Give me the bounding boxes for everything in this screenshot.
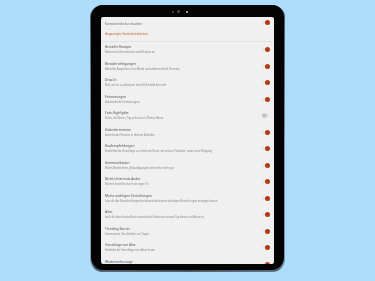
staticText: Drop In xyxy=(105,78,117,82)
button[interactable]: Einstellung an xyxy=(262,146,270,151)
button[interactable]: Einstellung an xyxy=(262,163,270,168)
button[interactable]: Kalendertermine xyxy=(101,126,274,143)
button[interactable]: Einstellung an xyxy=(262,179,270,184)
staticText: Nimm Nachrichten, Ankundigungen und mehr… xyxy=(105,166,174,170)
staticText: Entdecke die Vorschlage von Alexa heute xyxy=(105,248,155,252)
button[interactable]: Benachrichtigungen xyxy=(101,60,274,77)
staticText: Kalendertermine xyxy=(105,128,131,132)
staticText: Kaufempfehlungen xyxy=(105,144,135,148)
staticText: Angezeigte Startseitenkarten xyxy=(105,32,148,36)
button[interactable]: Kurznachricht durchsuchen xyxy=(101,17,274,29)
staticText: Kommunikation xyxy=(105,161,130,165)
button[interactable]: Einstellung an xyxy=(262,262,270,264)
staticText: Alexi xyxy=(105,210,113,214)
button[interactable]: Einstellung an xyxy=(262,80,270,85)
button[interactable]: Kaufempfehlungen xyxy=(101,142,274,159)
button[interactable]: Kommunikation xyxy=(101,159,274,176)
staticText: Trending Stories xyxy=(105,227,130,231)
staticText: Empfehlende Vorschlage zu erhalt von Kun… xyxy=(105,149,212,153)
staticText: Ruft, wo sie zu aktivieren bestellt Sie … xyxy=(105,83,167,87)
button[interactable]: Meine wichtigen Einstellungen xyxy=(101,192,274,209)
button[interactable]: Einstellung an xyxy=(262,47,270,52)
button[interactable]: Einstellung an xyxy=(262,212,270,217)
staticText: Aktuelles Angeboten, neu Musik und ander… xyxy=(105,67,180,71)
staticText: Bestellte Rezepte xyxy=(105,45,132,49)
button[interactable]: Vorschlage von Alex xyxy=(101,241,274,258)
staticText: Interessante Geschichten von Tagen xyxy=(105,232,150,236)
button[interactable]: Einstellung an xyxy=(262,245,270,250)
button[interactable]: Einstellung aus xyxy=(262,113,270,118)
button[interactable]: Foto-Highlights xyxy=(101,109,274,126)
button[interactable]: Einstellung an xyxy=(262,196,270,201)
button[interactable]: Trending Stories xyxy=(101,225,274,242)
staticText: Nicht-Unterstutz Audio xyxy=(105,177,141,181)
button[interactable]: Drop In xyxy=(101,76,274,93)
button[interactable]: Einstellung an xyxy=(262,64,270,69)
staticText: Anstehende Termine in deinem Kalender xyxy=(105,133,155,137)
button[interactable]: Erinnerungen xyxy=(101,93,274,110)
staticText: Lass dir das Benachrichtigen bestehend a… xyxy=(105,199,218,203)
staticText: Meine wichtigen Einstellungen xyxy=(105,194,152,198)
staticText: Erinnerungen xyxy=(105,95,126,99)
staticText: Fotos, die Neuen, Tag auf unserer Photos… xyxy=(105,116,164,120)
button[interactable]: Einstellung an xyxy=(262,130,270,135)
staticText: Bekommt Informationen und Rezepte an xyxy=(105,50,155,54)
button[interactable]: Einstellung an xyxy=(262,20,270,25)
button[interactable]: Einstellung an xyxy=(262,229,270,234)
staticText: Wettervorhersage xyxy=(105,260,133,264)
staticText: Kommt bestellen durch anzeigen Te xyxy=(105,182,149,186)
button[interactable]: Alexi xyxy=(101,208,274,225)
staticText: Vorschlage von Alex xyxy=(105,243,136,247)
staticText: lauft dir diese kontrolliert verwendeten… xyxy=(105,215,204,219)
staticText: Automatische Erinnerungen xyxy=(105,100,140,104)
staticText: Foto-Highlights xyxy=(105,111,129,115)
staticText: Kurznachricht durchsuchen xyxy=(105,22,143,26)
button[interactable]: Einstellung an xyxy=(262,97,270,102)
button[interactable]: Bestellte Rezepte xyxy=(101,43,274,60)
button[interactable]: Wettervorhersage xyxy=(101,258,274,264)
button[interactable]: Nicht-Unterstutz Audio xyxy=(101,175,274,192)
staticText: Benachrichtigungen xyxy=(105,62,136,66)
